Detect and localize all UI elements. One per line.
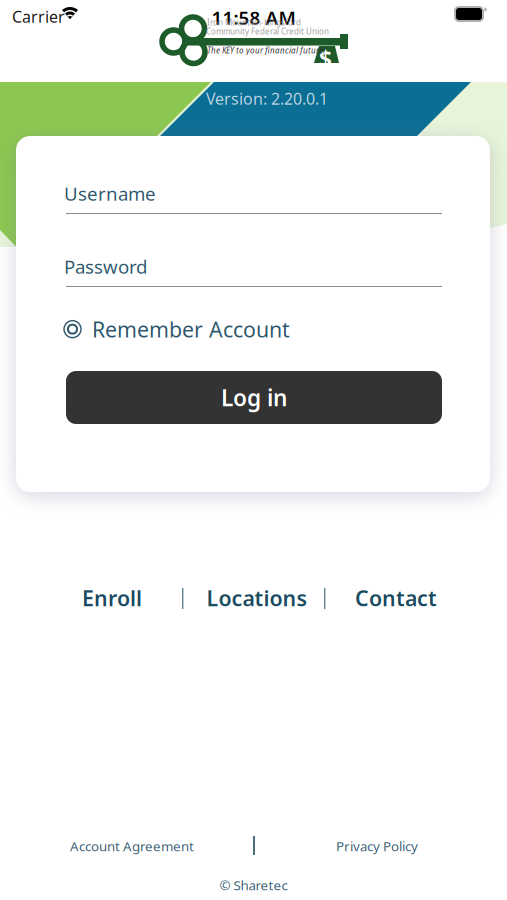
staticText: Locations (206, 584, 307, 612)
staticText: Remember Account (92, 315, 290, 343)
staticText: © Sharetec (219, 876, 287, 894)
button[interactable]: Contact (346, 582, 446, 614)
button[interactable]: Enroll (67, 582, 157, 614)
staticText: The KEY to your financial future! (207, 45, 325, 56)
staticText: Iron Mountain-Kingsford (207, 17, 301, 28)
staticText: $ (319, 44, 332, 74)
button[interactable]: Account Agreement (57, 833, 207, 859)
staticText: Community Federal Credit Union (206, 26, 329, 37)
staticText: Log in (221, 382, 287, 412)
button[interactable]: Remember Account (64, 309, 298, 349)
staticText: Username (64, 181, 156, 206)
staticText: Carrier (12, 6, 65, 27)
button[interactable]: Privacy Policy (322, 833, 432, 859)
staticText: Enroll (82, 584, 142, 612)
staticText: Account Agreement (70, 837, 194, 855)
staticText: 11:58 AM (211, 5, 295, 30)
button[interactable]: Log in (66, 371, 442, 424)
staticText: Version: 2.20.0.1 (206, 88, 328, 109)
staticText: Privacy Policy (336, 837, 418, 855)
button[interactable]: Locations (197, 582, 317, 614)
staticText: Password (64, 254, 147, 279)
staticText: Contact (355, 584, 437, 612)
